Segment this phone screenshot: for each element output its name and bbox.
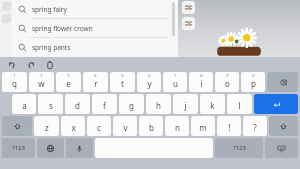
button[interactable]: n	[165, 116, 189, 136]
button[interactable]: k	[200, 94, 225, 114]
button[interactable]: 2	[29, 72, 54, 92]
staticText: g	[129, 100, 134, 111]
staticText: t	[121, 78, 124, 89]
staticText: 8	[200, 73, 203, 78]
staticText: v	[123, 122, 128, 133]
button[interactable]: j	[173, 94, 198, 114]
button[interactable]: 1	[2, 72, 27, 92]
staticText: 7	[174, 73, 177, 78]
staticText: 6	[148, 73, 151, 78]
button[interactable]: z	[34, 116, 59, 136]
staticText: !	[228, 122, 231, 133]
button[interactable]: !	[217, 116, 241, 136]
button[interactable]: 7	[163, 72, 187, 92]
button[interactable]: d	[65, 94, 90, 114]
staticText: n	[175, 122, 180, 133]
staticText: 5	[121, 73, 124, 78]
button[interactable]: b	[139, 116, 163, 136]
staticText: 1	[13, 73, 16, 78]
staticText: s	[49, 100, 53, 111]
staticText: h	[156, 100, 161, 111]
staticText: w	[38, 78, 45, 89]
staticText: m	[199, 122, 207, 133]
staticText: 2	[40, 73, 43, 78]
button[interactable]: Crop	[182, 17, 195, 30]
button[interactable]: g	[119, 94, 144, 114]
button[interactable]: 3	[56, 72, 81, 92]
button[interactable]: 4	[83, 72, 108, 92]
staticText: p	[251, 78, 256, 89]
staticText: o	[225, 78, 230, 89]
button[interactable]: c	[87, 116, 111, 136]
button[interactable]: s	[38, 94, 63, 114]
button[interactable]: 0	[241, 72, 265, 92]
staticText: k	[210, 100, 215, 111]
button[interactable]: Hide keyboard	[265, 138, 298, 158]
button[interactable]: Backspace	[267, 72, 298, 92]
staticText: x	[71, 122, 76, 133]
staticText: 9	[226, 73, 229, 78]
button[interactable]: a	[12, 94, 36, 114]
staticText: a	[22, 100, 27, 111]
staticText: spring pants	[32, 43, 71, 52]
staticText: 0	[252, 73, 255, 78]
button[interactable]: h	[146, 94, 171, 114]
button[interactable]: v	[113, 116, 137, 136]
button[interactable]: ?123	[215, 138, 263, 158]
button[interactable]: 9	[215, 72, 239, 92]
staticText: 3	[67, 73, 70, 78]
button[interactable]: ?	[243, 116, 267, 136]
button[interactable]: Shift	[269, 116, 298, 136]
staticText: j	[184, 100, 187, 111]
staticText: spring flower crown	[32, 24, 93, 33]
button[interactable]: spring flower crown	[12, 19, 178, 37]
staticText: y	[147, 78, 152, 89]
button[interactable]: 5	[110, 72, 135, 92]
staticText: d	[75, 100, 80, 111]
button[interactable]: spring fairy	[12, 0, 178, 18]
staticText: e	[66, 78, 71, 89]
staticText: ?123	[233, 144, 246, 152]
staticText: c	[97, 122, 101, 133]
button[interactable]: m	[191, 116, 215, 136]
staticText: 4	[94, 73, 97, 78]
button[interactable]: spring pants	[12, 38, 178, 56]
staticText: ?123	[12, 144, 25, 152]
staticText: l	[238, 100, 241, 111]
staticText: q	[12, 78, 17, 89]
staticText: f	[103, 100, 106, 111]
staticText: ?	[253, 122, 257, 133]
button[interactable]: Undo	[6, 59, 17, 70]
staticText: u	[173, 78, 178, 89]
button[interactable]: Redo	[25, 59, 36, 70]
staticText: i	[200, 78, 203, 89]
button[interactable]: l	[227, 94, 252, 114]
button[interactable]: Clipboard	[44, 59, 55, 70]
button[interactable]: f	[92, 94, 117, 114]
button[interactable]: Edit	[182, 1, 195, 14]
button[interactable]: x	[61, 116, 85, 136]
button[interactable]: Enter	[254, 94, 298, 114]
button[interactable]: Change language	[37, 138, 64, 158]
staticText: r	[94, 78, 98, 89]
staticText: spring fairy	[32, 5, 67, 14]
button[interactable]: 6	[137, 72, 161, 92]
staticText: z	[45, 122, 49, 133]
button[interactable]: ?123	[2, 138, 35, 158]
staticText: b	[149, 122, 154, 133]
button[interactable]: 8	[189, 72, 213, 92]
button[interactable]: Voice input	[66, 138, 93, 158]
button[interactable]: Shift	[2, 116, 32, 136]
